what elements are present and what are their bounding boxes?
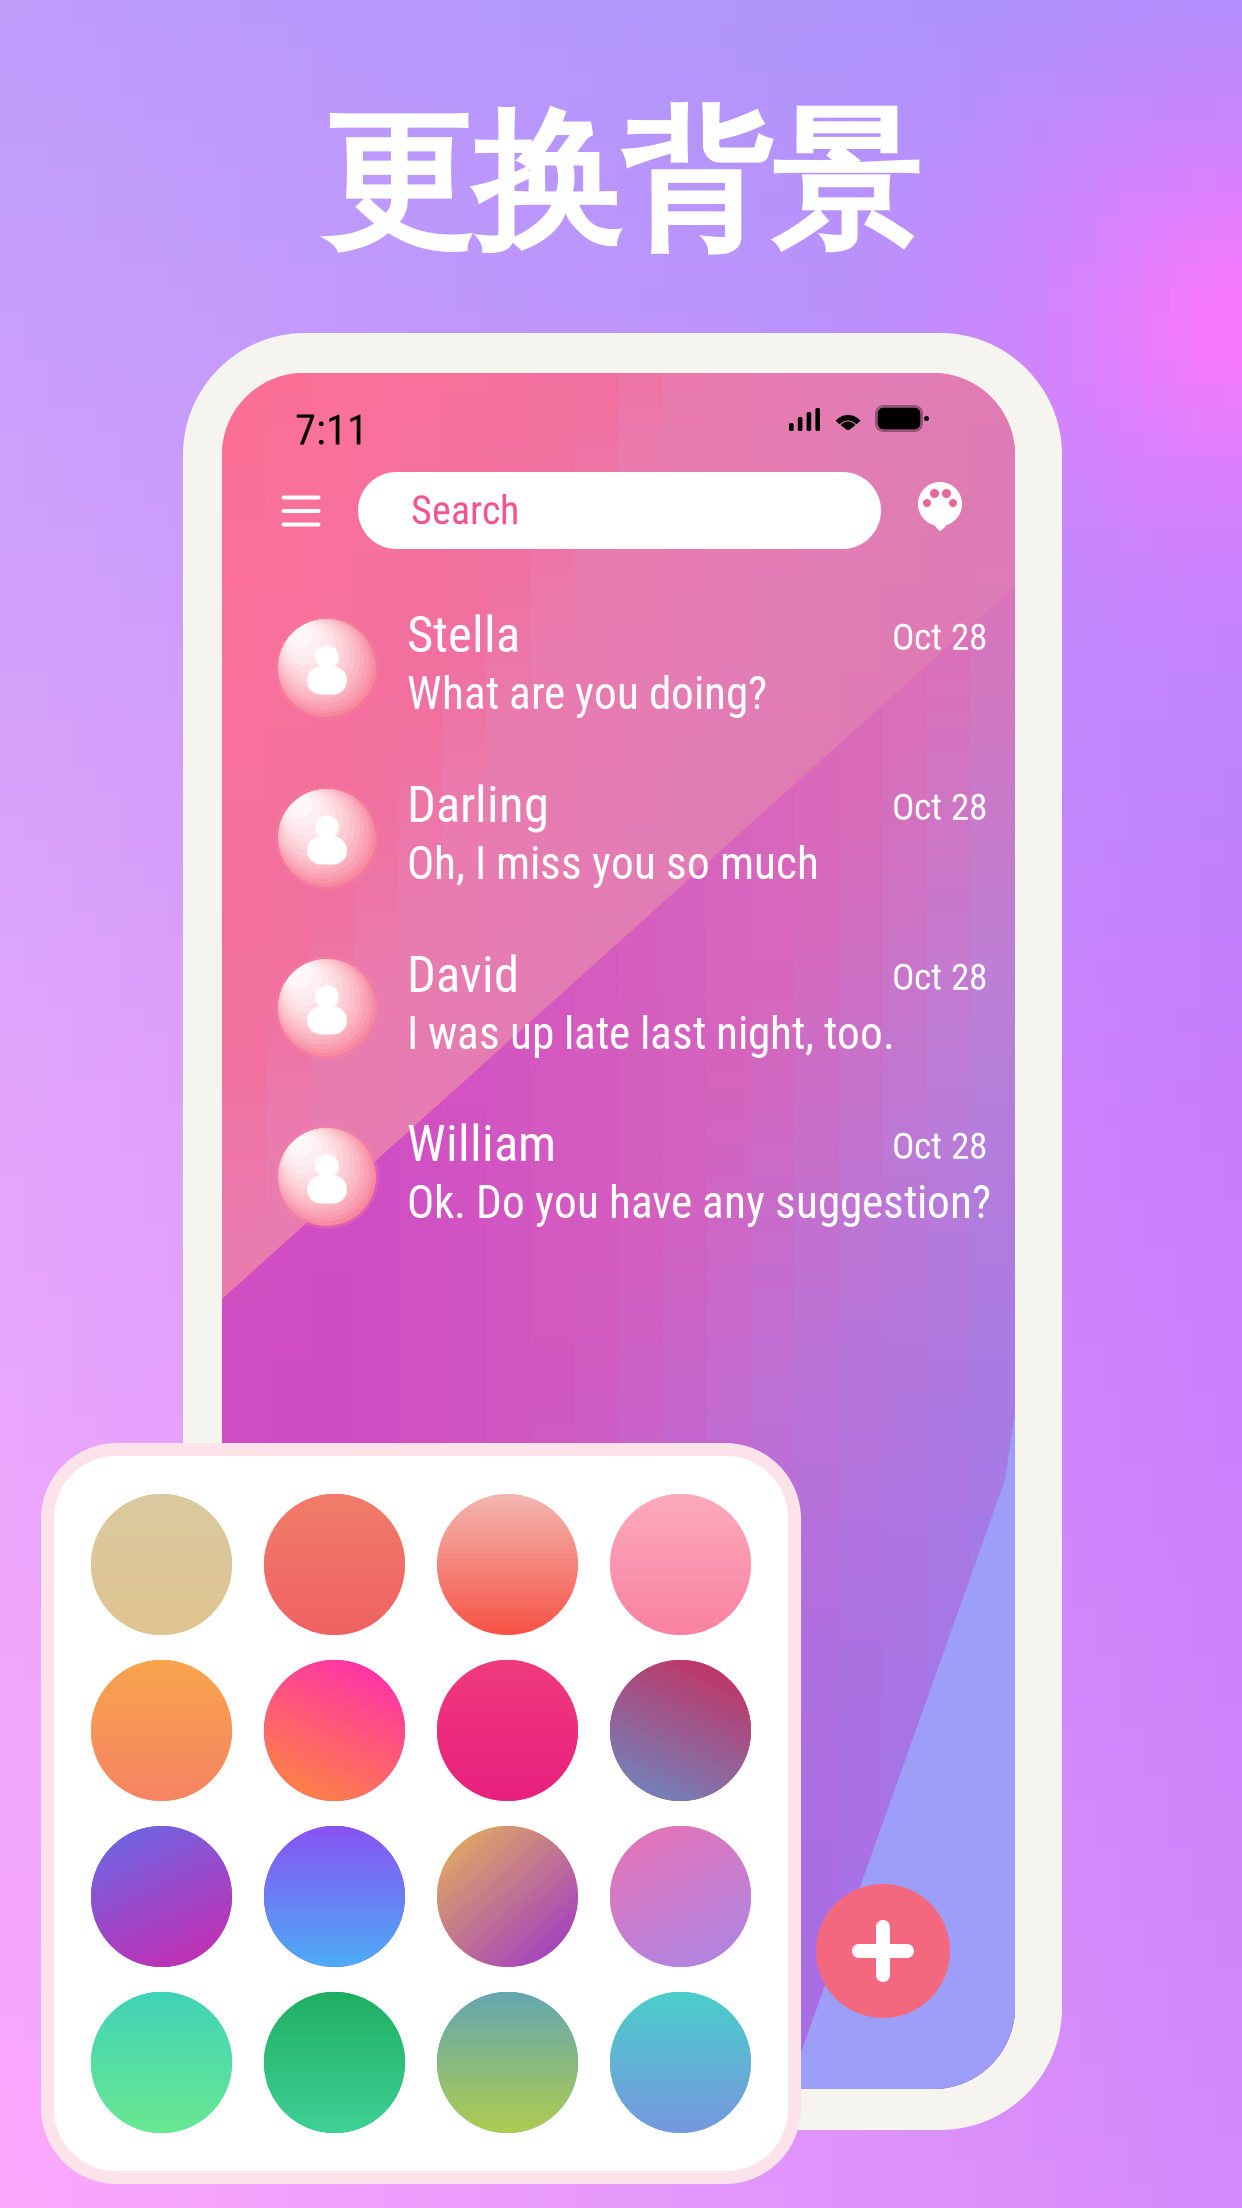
- staticText: David: [407, 945, 519, 1004]
- button[interactable]: Background colour: [610, 1992, 751, 2133]
- staticText: Darling: [407, 775, 549, 834]
- button[interactable]: Background colour: [91, 1660, 232, 1801]
- staticText: Ok. Do you have any suggestion?: [407, 1176, 991, 1229]
- button[interactable]: Background colour: [264, 1826, 405, 1967]
- button[interactable]: Background colour: [610, 1826, 751, 1967]
- button[interactable]: Theme: [916, 482, 972, 540]
- button[interactable]: Background colour: [437, 1992, 578, 2133]
- button[interactable]: New message: [816, 1884, 950, 2018]
- button[interactable]: Background colour: [264, 1494, 405, 1635]
- button[interactable]: Menu: [265, 472, 337, 550]
- staticText: Oct 28: [892, 1124, 987, 1168]
- staticText: Oh, I miss you so much: [407, 837, 819, 890]
- button[interactable]: Darling: [275, 763, 975, 913]
- button[interactable]: Search: [358, 472, 881, 549]
- button[interactable]: Background colour: [610, 1660, 751, 1801]
- staticText: 7:11: [295, 405, 368, 455]
- staticText: 更换背景: [323, 91, 919, 275]
- staticText: Stella: [407, 605, 520, 664]
- staticText: Search: [411, 487, 519, 534]
- button[interactable]: Background colour: [264, 1992, 405, 2133]
- staticText: Oct 28: [892, 785, 987, 829]
- button[interactable]: Background colour: [91, 1826, 232, 1967]
- button[interactable]: Background colour: [91, 1494, 232, 1635]
- staticText: Oct 28: [892, 955, 987, 999]
- staticText: Oct 28: [892, 615, 987, 659]
- staticText: William: [407, 1114, 556, 1173]
- button[interactable]: William: [275, 1102, 975, 1252]
- staticText: I was up late last night, too.: [407, 1007, 895, 1060]
- button[interactable]: Background colour: [437, 1494, 578, 1635]
- staticText: What are you doing?: [407, 667, 767, 720]
- button[interactable]: Background colour: [437, 1660, 578, 1801]
- button[interactable]: Background colour: [91, 1992, 232, 2133]
- button[interactable]: Background colour: [264, 1660, 405, 1801]
- button[interactable]: Background colour: [437, 1826, 578, 1967]
- button[interactable]: Stella: [275, 593, 975, 743]
- button[interactable]: David: [275, 933, 975, 1083]
- button[interactable]: Background colour: [610, 1494, 751, 1635]
